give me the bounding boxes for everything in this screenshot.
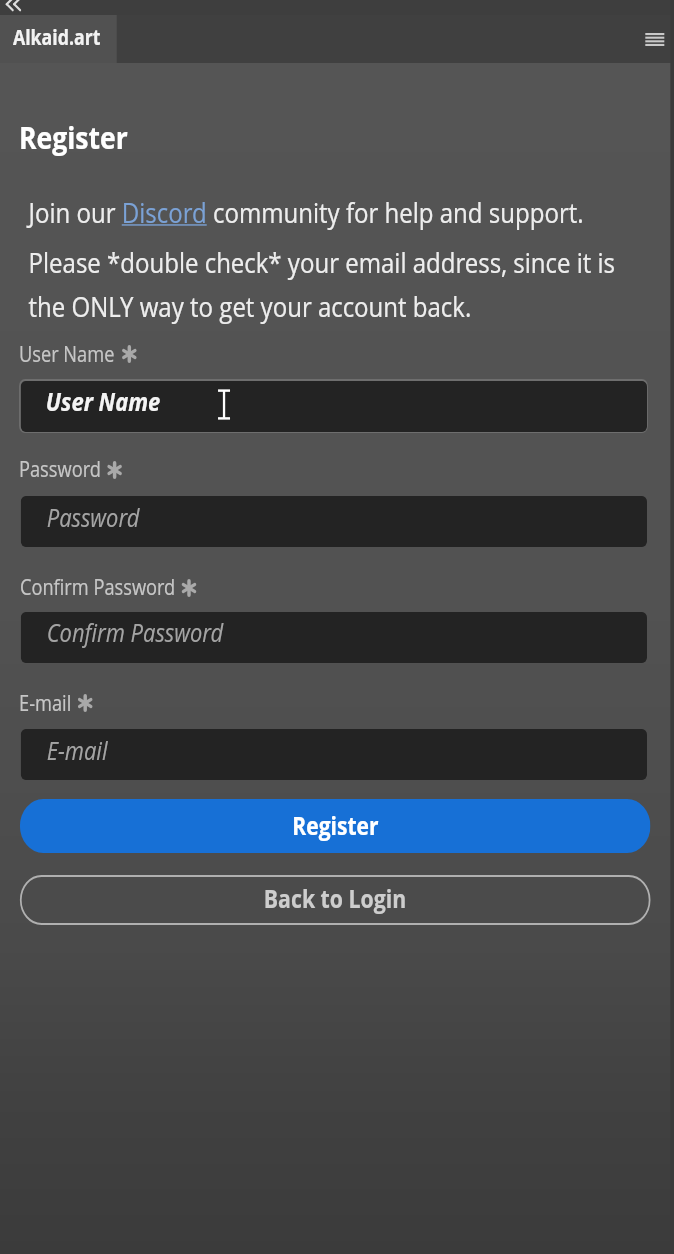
staticText: Back to Login — [264, 882, 406, 916]
staticText: User Name — [19, 340, 115, 369]
staticText: Password — [19, 455, 101, 484]
staticText: User Name — [46, 384, 161, 419]
staticText: Confirm Password — [20, 573, 176, 602]
button[interactable]: Panel menu — [639, 26, 669, 52]
button[interactable] — [21, 612, 647, 663]
button[interactable]: Register — [20, 799, 650, 853]
button[interactable]: Back to Login — [20, 875, 650, 925]
staticText: Password — [47, 500, 140, 535]
button[interactable] — [21, 381, 647, 432]
staticText: E-mail — [19, 689, 72, 718]
staticText: E-mail — [47, 733, 108, 768]
button[interactable] — [21, 729, 647, 780]
staticText: Register — [292, 809, 379, 842]
staticText: Join our Discord community for help and … — [28, 193, 584, 231]
staticText: Confirm Password — [47, 615, 224, 650]
button[interactable]: Alkaid.art — [0, 15, 117, 63]
button[interactable] — [21, 496, 647, 547]
button[interactable]: Collapse panel — [4, 0, 24, 15]
staticText: Alkaid.art — [13, 23, 101, 51]
staticText: the ONLY way to get your account back. — [28, 287, 471, 325]
staticText: Please *double check* your email address… — [28, 243, 615, 281]
staticText: Register — [19, 116, 128, 158]
